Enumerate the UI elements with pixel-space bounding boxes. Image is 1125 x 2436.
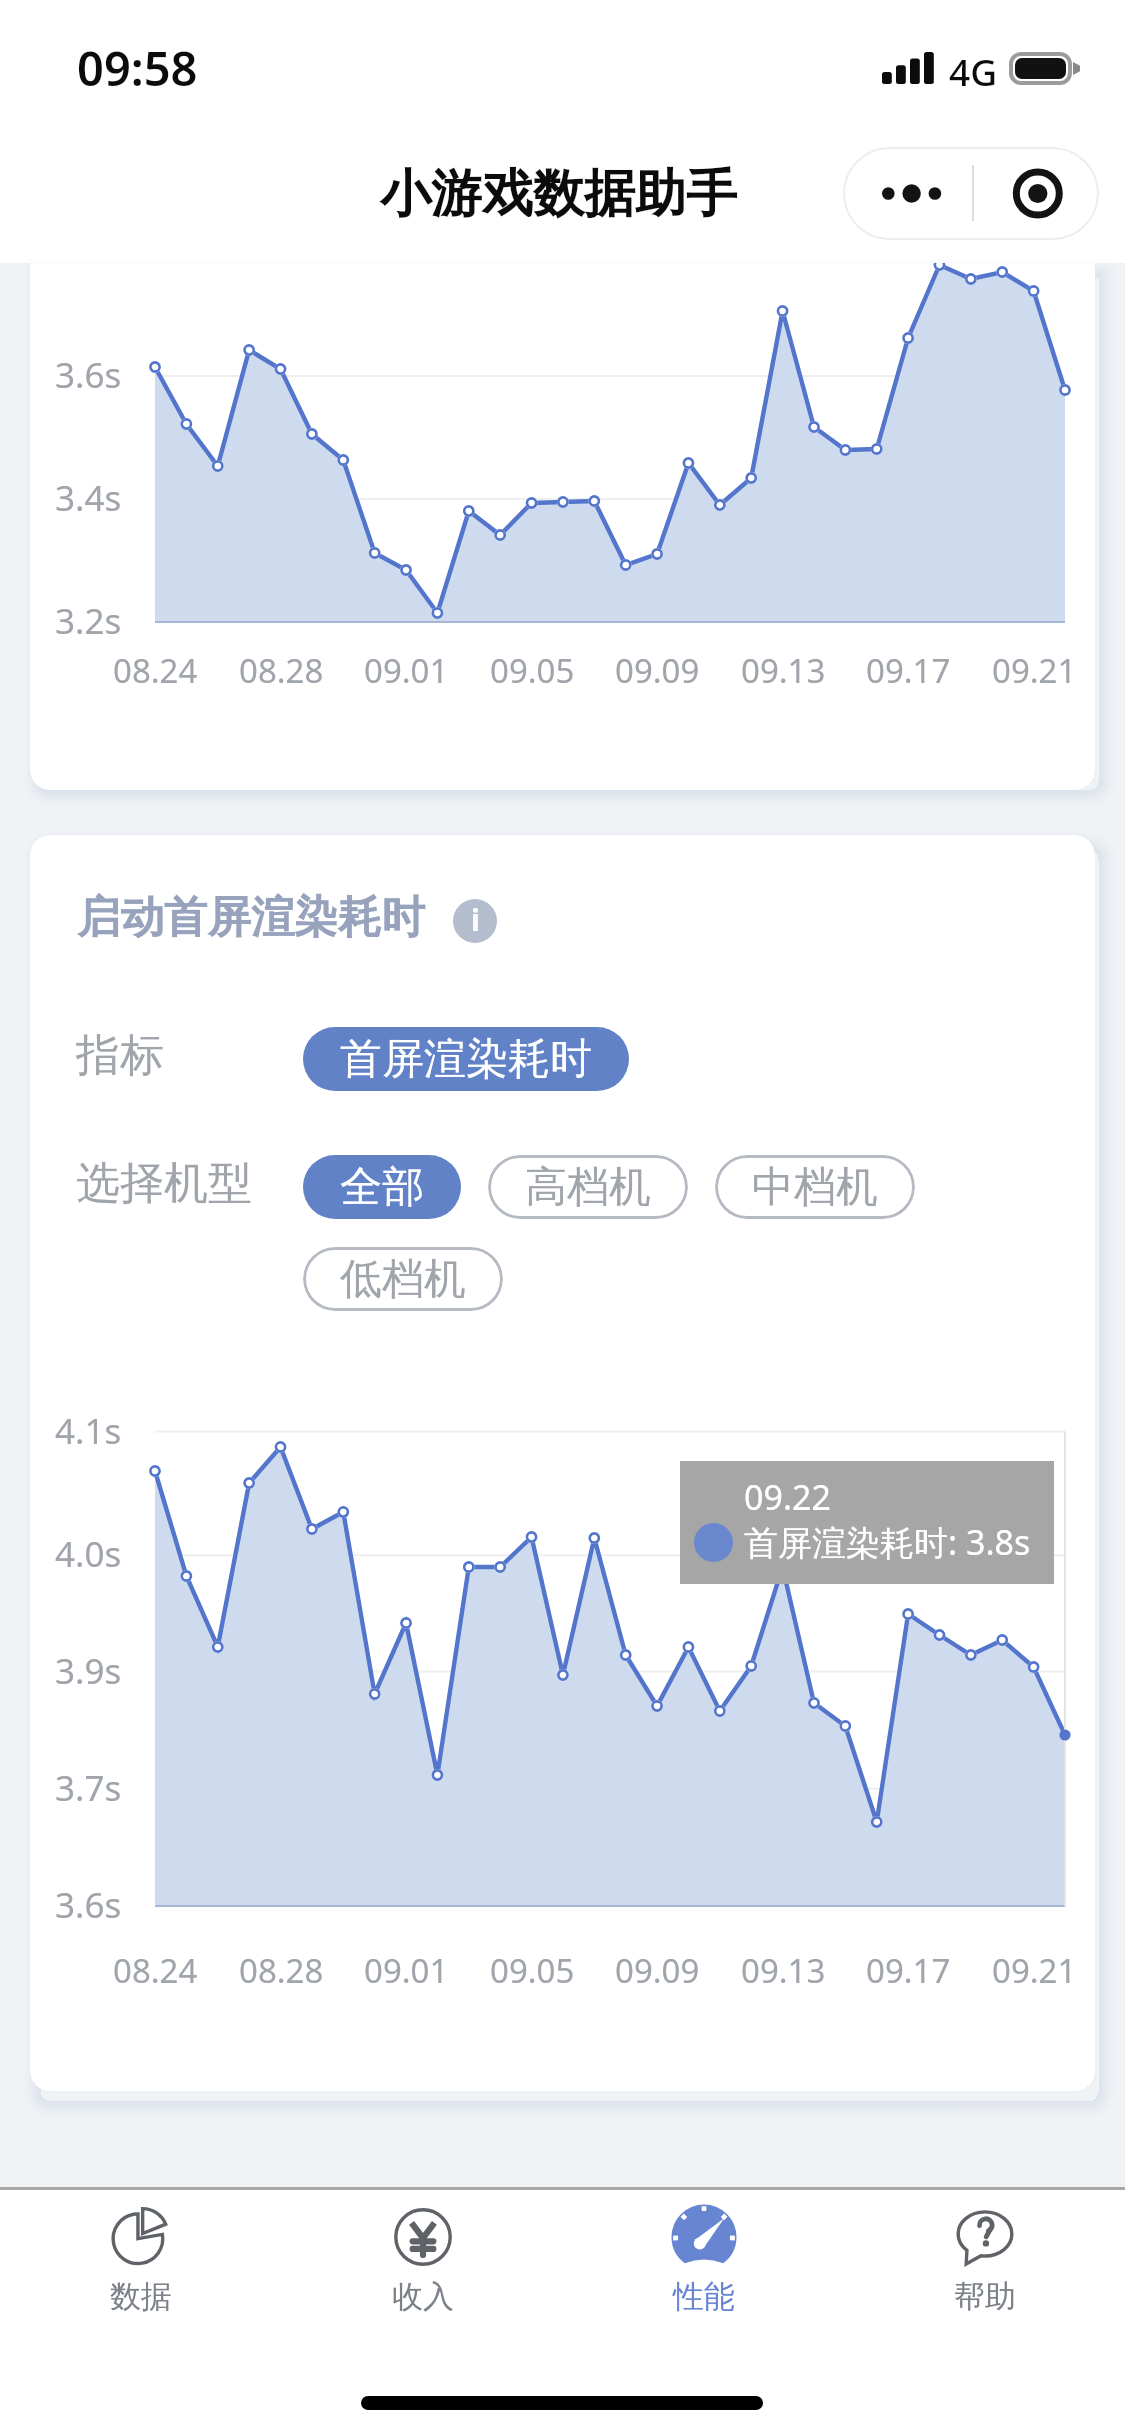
staticText: 3.7s xyxy=(55,1764,122,1812)
button[interactable]: Close mini program xyxy=(974,147,1099,240)
staticText: 09.22 xyxy=(744,1474,831,1520)
button[interactable]: More options xyxy=(843,147,971,240)
button[interactable]: 性能 xyxy=(563,2190,844,2390)
staticText: 高档机 xyxy=(525,1161,651,1214)
staticText: 首屏渲染耗时: 3.8s xyxy=(744,1519,1031,1565)
staticText: 3.6s xyxy=(55,1881,122,1929)
staticText: 09.09 xyxy=(615,1948,700,1993)
staticText: 启动首屏渲染耗时 xyxy=(77,890,425,945)
staticText: 3.4s xyxy=(55,474,122,522)
staticText: 08.28 xyxy=(239,1948,324,1993)
staticText: 全部 xyxy=(340,1161,424,1214)
staticText: 3.9s xyxy=(55,1647,122,1695)
staticText: 09.13 xyxy=(741,1948,826,1993)
staticText: 09.13 xyxy=(741,648,826,693)
staticText: 性能 xyxy=(673,2277,735,2316)
button[interactable]: 低档机 xyxy=(303,1247,503,1311)
staticText: 09.21 xyxy=(992,1948,1077,1993)
staticText: 4.0s xyxy=(55,1530,122,1578)
staticText: 指标 xyxy=(76,1028,164,1083)
button[interactable]: 全部 xyxy=(303,1155,461,1219)
staticText: 09.21 xyxy=(992,648,1077,693)
staticText: 08.24 xyxy=(113,648,198,693)
staticText: 收入 xyxy=(392,2277,454,2316)
staticText: 中档机 xyxy=(752,1161,878,1214)
staticText: 09.17 xyxy=(866,1948,951,1993)
staticText: 4.1s xyxy=(55,1407,122,1455)
button[interactable]: Metric info xyxy=(453,899,497,943)
staticText: 3.6s xyxy=(55,351,122,399)
staticText: 低档机 xyxy=(340,1253,466,1306)
button[interactable]: 收入 xyxy=(282,2190,563,2390)
staticText: 09.05 xyxy=(490,648,575,693)
staticText: 09.01 xyxy=(364,648,449,693)
staticText: 帮助 xyxy=(954,2277,1016,2316)
button[interactable]: 首屏渲染耗时 xyxy=(303,1027,629,1091)
staticText: 09.09 xyxy=(615,648,700,693)
staticText: 08.24 xyxy=(113,1948,198,1993)
staticText: 小游戏数据助手 xyxy=(380,162,737,226)
staticText: 首屏渲染耗时 xyxy=(340,1033,592,1086)
staticText: 09:58 xyxy=(77,36,198,100)
staticText: 选择机型 xyxy=(76,1156,252,1211)
staticText: i xyxy=(471,899,480,940)
button[interactable]: 数据 xyxy=(0,2190,282,2390)
staticText: 3.2s xyxy=(55,597,122,645)
staticText: 09.05 xyxy=(490,1948,575,1993)
staticText: 09.01 xyxy=(364,1948,449,1993)
staticText: 数据 xyxy=(110,2277,172,2316)
staticText: 08.28 xyxy=(239,648,324,693)
button[interactable]: 高档机 xyxy=(488,1155,688,1219)
button[interactable]: 帮助 xyxy=(844,2190,1125,2390)
staticText: 09.17 xyxy=(866,648,951,693)
staticText: 4G xyxy=(949,46,998,96)
button[interactable]: 中档机 xyxy=(715,1155,915,1219)
